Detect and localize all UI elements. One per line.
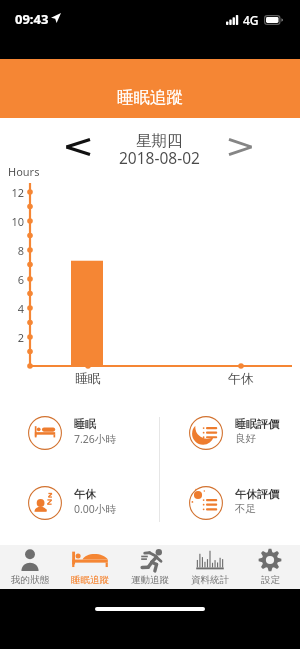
staticText: 睡眠 bbox=[74, 417, 96, 431]
staticText: 午休 bbox=[211, 370, 271, 386]
button[interactable]: 睡眠 bbox=[20, 409, 150, 457]
staticText: 8 bbox=[3, 243, 24, 258]
button[interactable]: 設定 bbox=[240, 545, 300, 589]
staticText: 睡眠 bbox=[58, 370, 118, 386]
staticText: 2 bbox=[3, 330, 24, 345]
button[interactable]: Previous day bbox=[58, 128, 98, 166]
staticText: 睡眠追蹤 bbox=[117, 87, 183, 108]
staticText: 10 bbox=[3, 214, 24, 229]
button[interactable]: 午休評價 bbox=[181, 479, 300, 527]
staticText: 4G bbox=[243, 12, 259, 28]
button[interactable]: Next day bbox=[220, 128, 260, 166]
staticText: 睡眠追蹤 bbox=[71, 574, 109, 586]
button[interactable]: 資料統計 bbox=[180, 545, 240, 589]
staticText: 0.00小時 bbox=[74, 502, 116, 516]
button[interactable]: 睡眠追蹤 bbox=[60, 545, 120, 589]
button[interactable]: 我的狀態 bbox=[0, 545, 60, 589]
staticText: 2018-08-02 bbox=[119, 147, 200, 168]
staticText: 12 bbox=[3, 185, 24, 200]
staticText: 午休評價 bbox=[235, 487, 279, 501]
staticText: 4 bbox=[3, 301, 24, 316]
staticText: 我的狀態 bbox=[11, 574, 49, 586]
staticText: 午休 bbox=[74, 487, 96, 501]
staticText: 星期四 bbox=[136, 131, 183, 151]
button[interactable]: 午休 bbox=[20, 479, 150, 527]
button[interactable]: 睡眠評價 bbox=[181, 409, 300, 457]
staticText: 09:43 bbox=[15, 10, 49, 28]
staticText: 6 bbox=[3, 272, 24, 287]
staticText: Hours bbox=[8, 164, 40, 179]
staticText: 運動追蹤 bbox=[131, 574, 169, 586]
staticText: 睡眠評價 bbox=[235, 417, 279, 431]
staticText: 資料統計 bbox=[191, 574, 229, 586]
button[interactable]: 運動追蹤 bbox=[120, 545, 180, 589]
staticText: 設定 bbox=[261, 574, 280, 586]
staticText: 良好 bbox=[235, 432, 256, 445]
staticText: 不足 bbox=[235, 502, 256, 515]
staticText: 7.26小時 bbox=[74, 432, 116, 446]
